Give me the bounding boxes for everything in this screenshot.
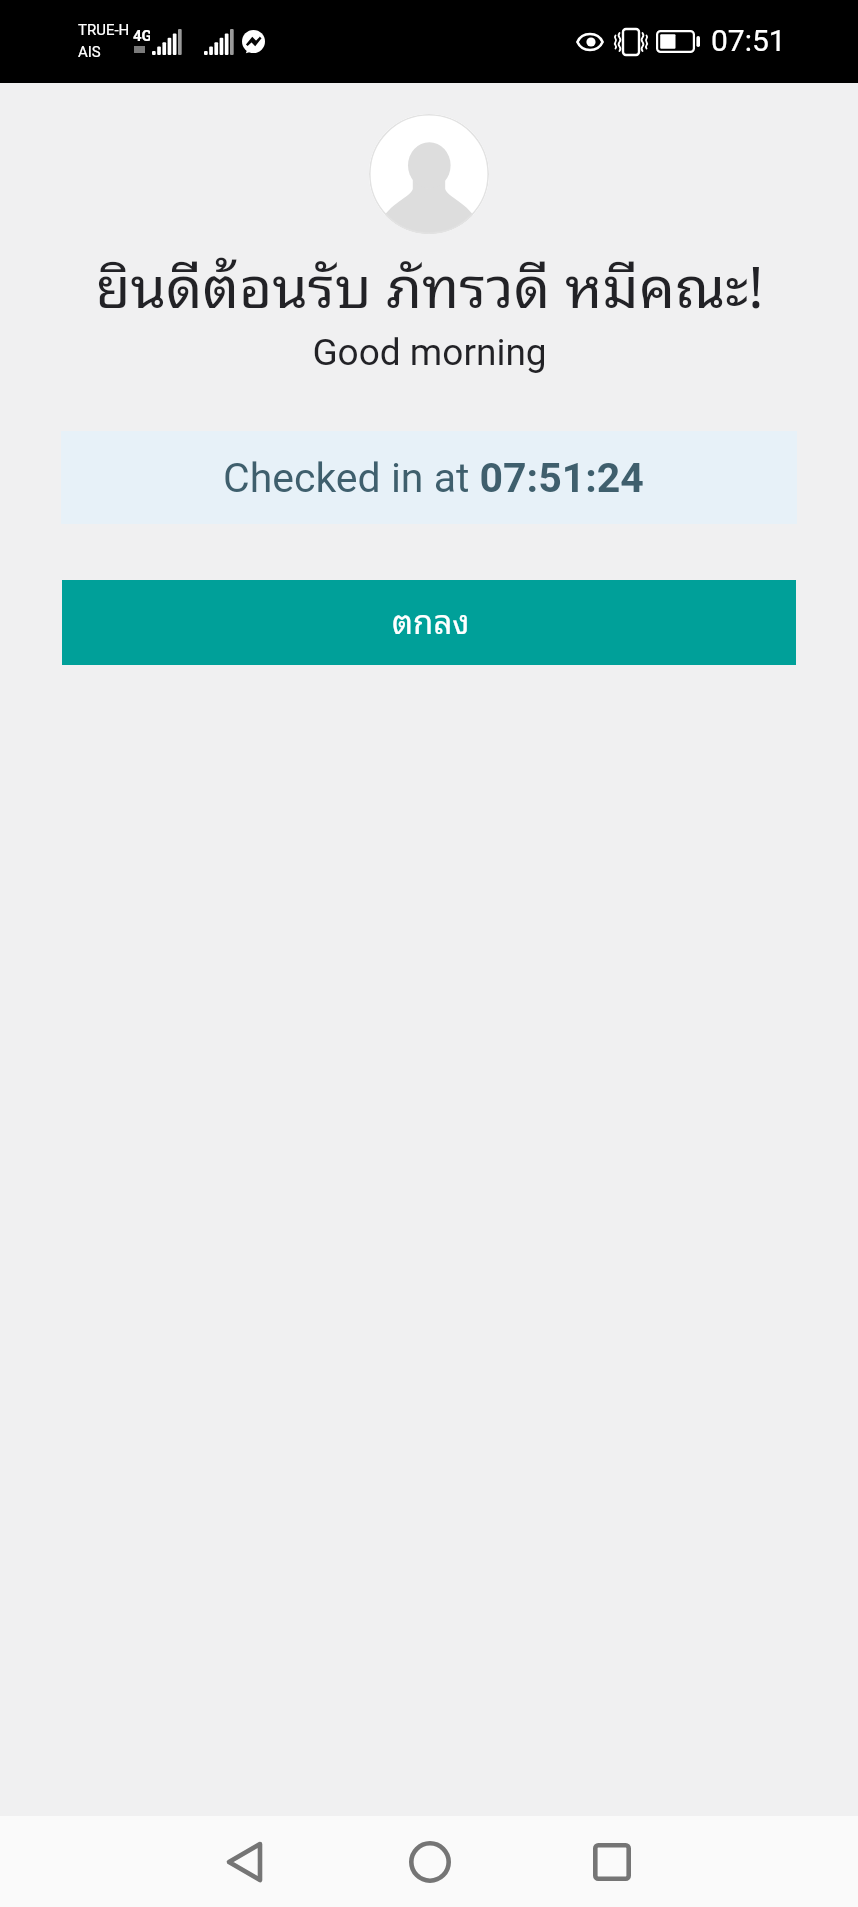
button[interactable]: ตกลง: [62, 580, 796, 665]
staticText: 4G: [133, 27, 150, 45]
button[interactable]: Back: [194, 1816, 295, 1907]
staticText: Good morning: [312, 331, 547, 374]
staticText: AIS: [78, 43, 101, 61]
button[interactable]: Home: [379, 1816, 480, 1907]
button[interactable]: Checked in at 07:51:24: [61, 431, 797, 524]
button[interactable]: Profile photo: [369, 114, 489, 234]
button[interactable]: Recent apps: [561, 1816, 662, 1907]
staticText: TRUE-H: [78, 21, 130, 39]
staticText: Checked in at 07:51:24: [223, 454, 644, 502]
staticText: ยินดีต้อนรับ ภัทรวดี หมีคณะ!: [95, 237, 764, 328]
staticText: 07:51: [711, 23, 786, 58]
staticText: ตกลง: [392, 593, 470, 646]
